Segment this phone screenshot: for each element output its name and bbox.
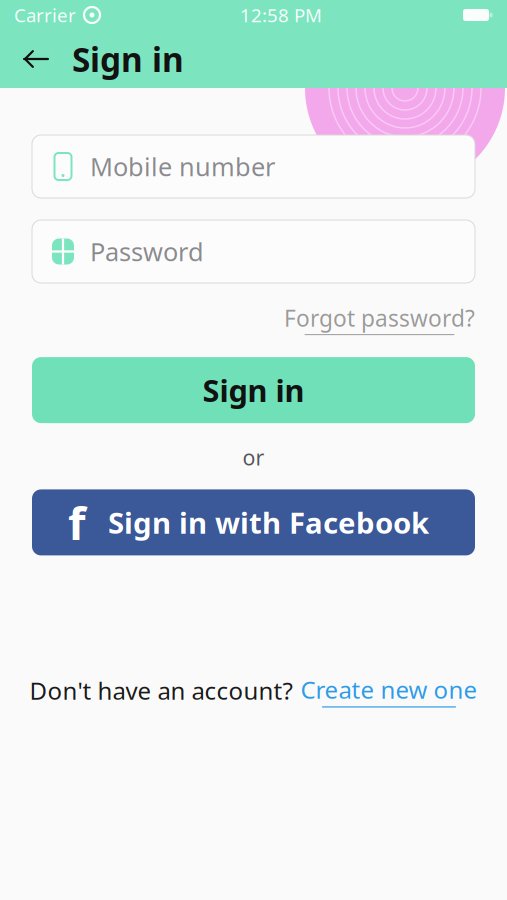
staticText: Sign in bbox=[72, 37, 184, 81]
button[interactable]: Create new one bbox=[300, 673, 477, 707]
staticText: Carrier bbox=[14, 3, 76, 27]
staticText: Create new one bbox=[300, 673, 477, 705]
button[interactable]: Sign in bbox=[32, 357, 475, 423]
button[interactable]: Forgot password? bbox=[284, 303, 475, 335]
staticText: Password bbox=[90, 235, 204, 268]
staticText: 12:58 PM bbox=[240, 3, 322, 27]
staticText: Mobile number bbox=[90, 150, 275, 183]
staticText: or bbox=[242, 443, 264, 471]
staticText: Sign in with Facebook bbox=[108, 503, 429, 542]
staticText: Don't have an account? bbox=[29, 674, 292, 706]
staticText: Sign in bbox=[202, 370, 304, 410]
staticText: f bbox=[68, 492, 86, 552]
staticText: Forgot password? bbox=[284, 303, 475, 333]
button[interactable]: Back bbox=[14, 37, 58, 81]
button[interactable]: f bbox=[32, 489, 475, 555]
